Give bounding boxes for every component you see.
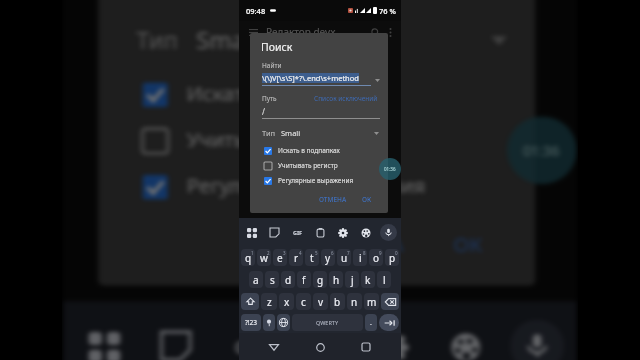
button[interactable]: Theme [437,320,491,360]
button[interactable]: g [313,271,327,288]
button[interactable]: Backspace [381,293,399,310]
button[interactable]: Clipboard [295,320,348,360]
staticText: 5 [315,250,318,256]
staticText: 2 [267,250,270,256]
button[interactable]: Тип [250,128,388,138]
staticText: z [267,295,272,309]
button[interactable]: QWERTY [292,314,363,331]
button[interactable]: u [337,249,351,266]
button[interactable]: Apps [243,224,260,241]
button[interactable]: b [330,293,345,310]
staticText: 9 [379,250,382,256]
button[interactable]: Emoji [263,314,275,331]
staticText: 01:36 [384,166,396,172]
button[interactable]: k [361,271,375,288]
staticText: Список исключений [314,94,378,103]
staticText: v [318,295,324,309]
button[interactable]: Voice input [380,224,397,241]
button[interactable]: d [281,271,295,288]
button[interactable]: ?!23 [241,314,261,331]
staticText: m [367,295,377,309]
staticText: Регулярные выражения [278,176,354,185]
button[interactable]: z [261,293,277,310]
button[interactable]: Voice input [510,320,564,360]
button[interactable]: Settings [364,320,418,360]
button[interactable]: Search [369,26,381,38]
staticText: Путь [262,94,277,103]
button[interactable]: Регулярные выражения [98,172,536,199]
button[interactable]: GIF [289,224,306,241]
button[interactable]: Recent apps [355,336,377,358]
staticText: 01:36 [523,141,561,159]
button[interactable]: Учитывать регистр [98,126,536,153]
button[interactable]: Stickers [266,224,283,241]
button[interactable]: ОТМЕНА [314,192,352,207]
button[interactable]: Список исключений [314,94,378,103]
button[interactable]: Enter [379,314,399,331]
button[interactable]: y [321,249,335,266]
button[interactable]: Регулярные выражения [250,176,388,185]
staticText: 3 [283,250,286,256]
button[interactable]: GIF [222,320,276,360]
button[interactable]: Theme [357,224,374,241]
staticText: Тип [136,24,180,55]
button[interactable]: l [377,271,391,288]
button[interactable]: v [313,293,328,310]
button[interactable]: Тип [98,24,536,55]
button[interactable]: Home [309,336,331,358]
staticText: Найти [262,61,282,70]
button[interactable]: f [297,271,311,288]
staticText: 7 [347,250,350,256]
button[interactable]: q [241,249,255,266]
button[interactable]: Shift [241,293,259,310]
button[interactable]: Recording timer [379,158,401,180]
button[interactable]: Clipboard [312,224,329,241]
staticText: y [325,251,331,265]
button[interactable]: Settings [334,224,351,241]
staticText: GIF [234,335,266,357]
button[interactable]: o [369,249,383,266]
button[interactable]: j [345,271,359,288]
button[interactable]: . [365,314,377,331]
button[interactable]: Recording timer [507,116,577,184]
staticText: r [294,251,299,265]
button[interactable]: r [289,249,303,266]
button[interactable]: Stickers [149,320,203,360]
button[interactable]: Учитывать регистр [250,161,388,170]
button[interactable]: ОК [357,192,377,207]
staticText: . [370,318,372,328]
button[interactable]: Switch language [277,314,290,331]
staticText: / [262,106,265,117]
staticText: 6 [331,250,334,256]
staticText: i [359,251,362,265]
button[interactable]: i [353,249,367,266]
button[interactable]: p [385,249,399,266]
button[interactable]: w [257,249,271,266]
button[interactable]: Open navigation menu [247,26,259,38]
staticText: Искать в подпапках [278,146,340,155]
button[interactable]: c [296,293,311,310]
staticText: b [334,295,341,309]
staticText: Учитывать регистр [187,126,377,153]
button[interactable]: ОТМЕНА [301,221,421,267]
staticText: x [284,295,290,309]
button[interactable]: a [249,271,263,288]
staticText: 1 [251,250,254,256]
staticText: f [302,273,306,287]
button[interactable]: ОК [437,221,501,267]
button[interactable]: More options [385,27,395,37]
button[interactable]: h [329,271,343,288]
button[interactable]: x [279,293,294,310]
button[interactable]: Apps [76,320,130,360]
staticText: Учитывать регистр [278,161,338,170]
staticText: 4 [299,250,302,256]
button[interactable]: Back [263,336,285,358]
button[interactable]: t [305,249,319,266]
button[interactable]: e [273,249,287,266]
button[interactable]: m [364,293,379,310]
button[interactable]: s [265,271,279,288]
button[interactable]: Искать в подпапках [250,146,388,155]
button[interactable]: Искать в подпапках [98,79,536,107]
button[interactable]: n [347,293,362,310]
staticText: a [253,273,259,287]
